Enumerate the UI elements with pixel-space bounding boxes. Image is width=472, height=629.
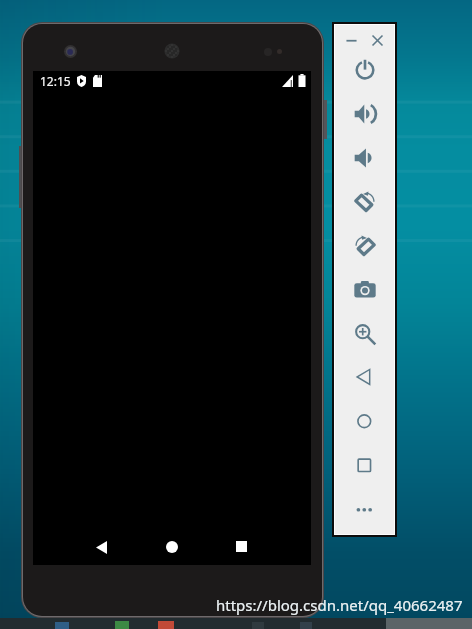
- button[interactable]: Recents: [223, 528, 259, 564]
- button[interactable]: Overview: [348, 449, 382, 483]
- button[interactable]: Home: [348, 405, 382, 439]
- staticText: 12:15: [40, 73, 71, 89]
- button[interactable]: Rotate right: [348, 229, 382, 263]
- button[interactable]: Home: [154, 529, 190, 565]
- button[interactable]: Back: [83, 529, 119, 565]
- button[interactable]: Back: [348, 361, 382, 395]
- staticText: https://blog.csdn.net/qq_40662487: [216, 595, 463, 615]
- button[interactable]: Volume down: [348, 141, 382, 175]
- button[interactable]: Volume up: [348, 97, 382, 131]
- button[interactable]: Power: [348, 52, 382, 86]
- button[interactable]: Minimize: [340, 29, 362, 51]
- button[interactable]: Rotate left: [348, 185, 382, 219]
- button[interactable]: Take screenshot: [348, 273, 382, 307]
- button[interactable]: More: [348, 493, 382, 527]
- button[interactable]: Close: [366, 29, 388, 51]
- button[interactable]: Zoom: [348, 317, 382, 351]
